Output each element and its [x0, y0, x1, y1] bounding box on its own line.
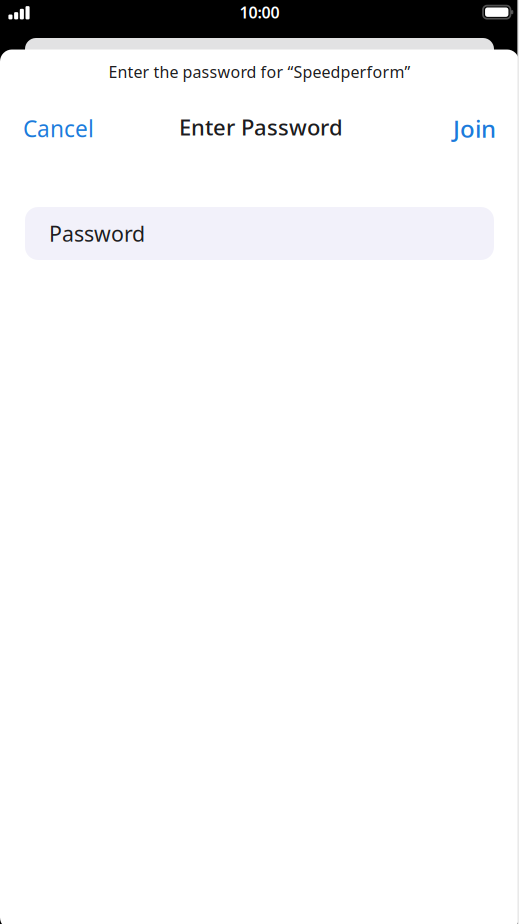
staticText: 10:00: [239, 1, 279, 23]
staticText: Enter the password for “Speedperform”: [108, 61, 410, 83]
staticText: Password: [49, 219, 145, 248]
button[interactable]: Cancel: [21, 107, 96, 150]
button[interactable]: Join: [451, 106, 498, 151]
staticText: Enter Password: [179, 112, 343, 142]
button[interactable]: Password: [25, 207, 494, 260]
staticText: Cancel: [23, 113, 94, 144]
staticText: Join: [453, 112, 496, 145]
